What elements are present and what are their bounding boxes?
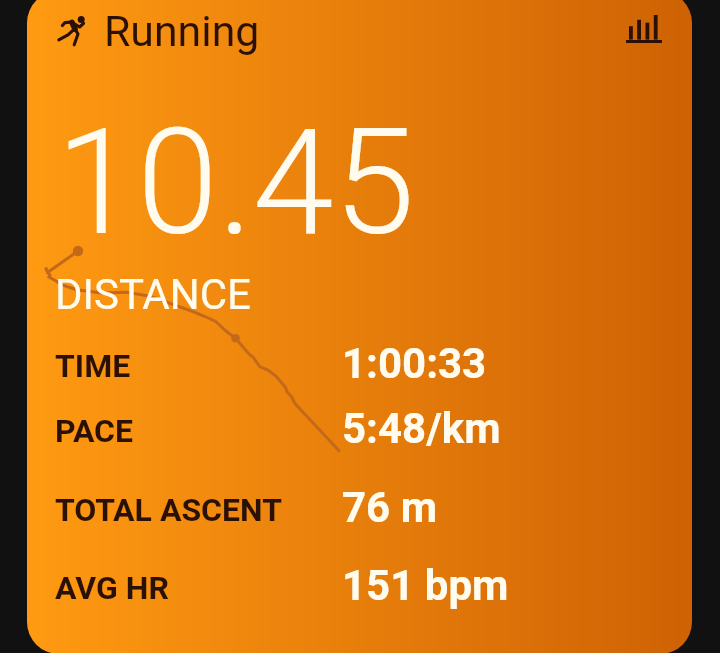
staticText: DISTANCE: [55, 270, 251, 319]
staticText: Running: [104, 6, 260, 56]
button[interactable]: Running: [27, 3, 487, 59]
staticText: 10.45: [56, 98, 415, 269]
button[interactable]: TOTAL ASCENT: [27, 475, 692, 531]
button[interactable]: Show statistics: [611, 0, 677, 59]
staticText: PACE: [55, 412, 134, 450]
button[interactable]: AVG HR: [27, 553, 692, 609]
staticText: 151 bpm: [342, 561, 509, 610]
staticText: 76 m: [342, 483, 438, 532]
staticText: 5:48/km: [342, 404, 501, 453]
staticText: 1:00:33: [342, 339, 487, 388]
staticText: TOTAL ASCENT: [55, 491, 283, 529]
staticText: TIME: [55, 347, 131, 385]
button[interactable]: PACE: [27, 396, 692, 452]
button[interactable]: TIME: [27, 331, 692, 387]
staticText: AVG HR: [55, 569, 169, 607]
